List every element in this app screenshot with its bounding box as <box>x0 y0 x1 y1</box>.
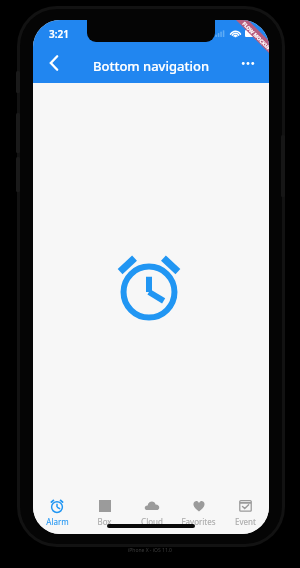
button[interactable]: More options <box>233 48 263 78</box>
staticText: Event <box>235 516 256 527</box>
staticText: Bottom navigation <box>93 57 210 75</box>
button[interactable]: Back <box>39 48 69 78</box>
button[interactable]: Favorites <box>175 488 222 527</box>
button[interactable]: Box <box>81 488 128 527</box>
button[interactable]: Alarm <box>33 488 81 527</box>
button[interactable]: Event <box>222 488 269 527</box>
staticText: Alarm <box>46 516 69 527</box>
staticText: Box <box>97 516 112 527</box>
staticText: Cloud <box>141 516 163 527</box>
staticText: FLOW MOCKUPS <box>240 20 269 54</box>
staticText: Favorites <box>181 516 216 527</box>
button[interactable]: Cloud <box>128 488 175 527</box>
staticText: iPhone X - iOS 11.0 <box>128 547 172 554</box>
staticText: 3:21 <box>49 27 69 41</box>
